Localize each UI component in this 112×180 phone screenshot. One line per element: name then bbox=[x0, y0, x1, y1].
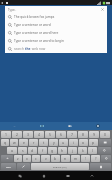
staticText: English (UK) bbox=[53, 165, 67, 168]
button[interactable]: Keyboard down bbox=[88, 172, 96, 180]
button[interactable]: f bbox=[38, 147, 47, 154]
staticText: j bbox=[72, 148, 73, 153]
button[interactable]: e bbox=[19, 139, 28, 146]
button[interactable]: Gallery bbox=[28, 122, 56, 130]
button[interactable]: Type a sentence or word to begin bbox=[5, 37, 107, 45]
staticText: Туре.. bbox=[8, 8, 17, 12]
button[interactable]: z bbox=[14, 155, 22, 162]
button[interactable]: 8 bbox=[78, 131, 88, 138]
staticText: p bbox=[92, 140, 95, 145]
button[interactable]: 1 bbox=[1, 131, 11, 138]
staticText: ! bbox=[85, 156, 86, 161]
staticText: c bbox=[35, 156, 37, 161]
other: Clear bbox=[101, 8, 104, 11]
button[interactable]: Sym bbox=[1, 163, 16, 170]
button[interactable]: Overview bbox=[64, 172, 72, 180]
button[interactable]: The quick brown fox jumps bbox=[5, 13, 107, 21]
button[interactable]: 0 bbox=[100, 131, 110, 138]
staticText: search bbox=[14, 47, 25, 51]
button[interactable]: shift bbox=[1, 155, 13, 162]
staticText: v bbox=[45, 156, 47, 161]
button[interactable]: More options bbox=[84, 122, 112, 130]
button[interactable]: 6 bbox=[56, 131, 66, 138]
staticText: x bbox=[26, 156, 28, 161]
button[interactable]: v bbox=[41, 155, 50, 162]
staticText: u bbox=[62, 140, 65, 145]
staticText: Type a sentence or word bbox=[14, 23, 51, 27]
staticText: 3 bbox=[27, 132, 29, 137]
button[interactable]: Type a sentence or word here bbox=[5, 29, 107, 37]
button[interactable]: c bbox=[32, 155, 40, 162]
button[interactable]: 4 bbox=[34, 131, 44, 138]
staticText: The quick brown fox jumps bbox=[14, 15, 55, 19]
staticText: y bbox=[53, 140, 55, 145]
button[interactable]: ! bbox=[81, 155, 90, 162]
staticText: 2 bbox=[16, 132, 18, 137]
button[interactable]: Camera bbox=[56, 122, 84, 130]
staticText: 6 bbox=[60, 132, 62, 137]
staticText: n bbox=[64, 156, 67, 161]
button[interactable]: u bbox=[59, 139, 68, 146]
button[interactable]: 5 bbox=[45, 131, 55, 138]
button[interactable]: m bbox=[71, 155, 80, 162]
button[interactable]: i bbox=[69, 139, 78, 146]
staticText: Sym bbox=[6, 165, 11, 168]
button[interactable]: a bbox=[7, 147, 17, 154]
button[interactable]: s bbox=[18, 147, 27, 154]
staticText: Type a sentence or word to begin bbox=[14, 39, 64, 43]
staticText: i bbox=[73, 140, 74, 145]
button[interactable]: English (UK) bbox=[31, 163, 89, 170]
button[interactable]: t bbox=[39, 139, 48, 146]
staticText: q bbox=[4, 140, 7, 145]
button[interactable]: q bbox=[1, 139, 9, 146]
button[interactable]: search bbox=[5, 45, 107, 53]
staticText: f bbox=[42, 148, 44, 153]
button[interactable]: n bbox=[61, 155, 70, 162]
button[interactable]: Type a sentence or word bbox=[5, 21, 107, 29]
staticText: 0 bbox=[104, 132, 106, 137]
button[interactable]: h bbox=[58, 147, 67, 154]
button[interactable]: x bbox=[23, 155, 31, 162]
button[interactable]: 3 bbox=[23, 131, 33, 138]
staticText: 7 bbox=[71, 132, 73, 137]
button[interactable]: d bbox=[28, 147, 37, 154]
staticText: r bbox=[33, 140, 35, 145]
button[interactable]: ret bbox=[101, 155, 111, 162]
staticText: 8 bbox=[82, 132, 84, 137]
button[interactable]: Home bbox=[40, 172, 48, 180]
button[interactable]: 7 bbox=[67, 131, 77, 138]
button[interactable]: go bbox=[98, 147, 111, 154]
button[interactable]: 9 bbox=[89, 131, 99, 138]
staticText: k bbox=[82, 148, 84, 153]
staticText: e bbox=[23, 140, 25, 145]
staticText: d bbox=[31, 148, 34, 153]
button[interactable]: del bbox=[99, 139, 111, 146]
button[interactable]: b bbox=[51, 155, 60, 162]
staticText: o bbox=[82, 140, 85, 145]
staticText: 4 bbox=[38, 132, 40, 137]
button[interactable]: ? bbox=[91, 155, 100, 162]
button[interactable]: k bbox=[78, 147, 87, 154]
button[interactable]: o bbox=[79, 139, 88, 146]
button[interactable]: g bbox=[48, 147, 57, 154]
staticText: 5 bbox=[49, 132, 51, 137]
button[interactable]: w bbox=[10, 139, 18, 146]
staticText: 1 bbox=[5, 132, 7, 137]
staticText: a bbox=[11, 148, 13, 153]
button[interactable]: r bbox=[29, 139, 38, 146]
staticText: 9 bbox=[93, 132, 95, 137]
staticText: t bbox=[43, 140, 45, 145]
button[interactable]: Туре.. bbox=[5, 6, 107, 13]
button[interactable]: 2 bbox=[12, 131, 22, 138]
staticText: b bbox=[54, 156, 57, 161]
button[interactable]: ent bbox=[90, 163, 111, 170]
button[interactable]: j bbox=[68, 147, 77, 154]
button[interactable]: Recents bbox=[16, 172, 24, 180]
button[interactable]: lang bbox=[17, 163, 30, 170]
staticText: l bbox=[92, 148, 93, 153]
staticText: w bbox=[13, 140, 16, 145]
button[interactable]: l bbox=[88, 147, 97, 154]
button[interactable]: p bbox=[89, 139, 98, 146]
button[interactable]: y bbox=[49, 139, 58, 146]
